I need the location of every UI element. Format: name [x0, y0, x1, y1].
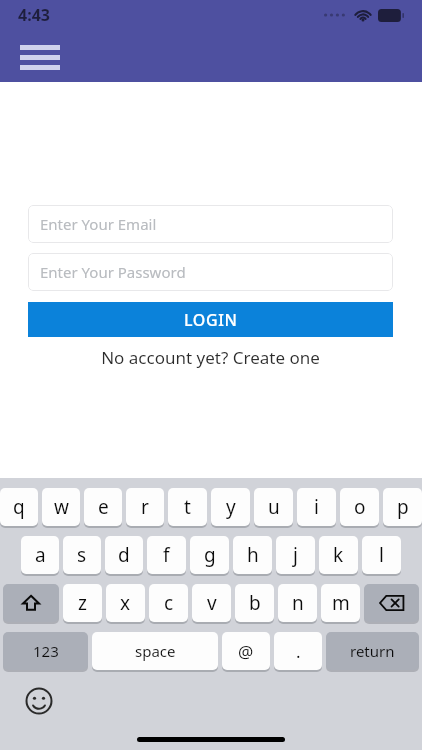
staticText: p	[397, 494, 409, 520]
staticText: i	[314, 494, 319, 520]
button[interactable]: n	[278, 584, 317, 622]
button[interactable]: p	[383, 488, 422, 526]
staticText: t	[184, 494, 191, 520]
button[interactable]: LOGIN	[28, 302, 393, 337]
button[interactable]: r	[126, 488, 164, 526]
staticText: w	[54, 494, 69, 520]
button[interactable]: q	[0, 488, 38, 526]
staticText: m	[332, 590, 350, 616]
staticText: y	[226, 494, 236, 520]
button[interactable]: space	[92, 632, 218, 670]
staticText: s	[77, 542, 87, 568]
staticText: g	[204, 542, 216, 568]
staticText: f	[163, 542, 170, 568]
button[interactable]: return	[326, 632, 419, 670]
button[interactable]: h	[233, 536, 272, 574]
button[interactable]: Enter Your Email	[28, 205, 393, 243]
button[interactable]: l	[362, 536, 401, 574]
button[interactable]: Open navigation menu	[12, 40, 68, 74]
staticText: b	[249, 590, 261, 616]
button[interactable]: u	[254, 488, 293, 526]
button[interactable]: c	[149, 584, 188, 622]
staticText: u	[268, 494, 280, 520]
staticText: a	[35, 542, 46, 568]
staticText: space	[135, 641, 176, 661]
staticText: l	[379, 542, 384, 568]
button[interactable]: w	[42, 488, 80, 526]
staticText: 4:43	[18, 4, 50, 26]
button[interactable]: s	[63, 536, 101, 574]
staticText: No account yet? Create one	[101, 346, 320, 369]
button[interactable]: @	[222, 632, 270, 670]
staticText: .	[296, 640, 301, 663]
button[interactable]: b	[235, 584, 274, 622]
staticText: o	[354, 494, 366, 520]
staticText: d	[118, 542, 130, 568]
button[interactable]: y	[211, 488, 250, 526]
button[interactable]: x	[106, 584, 145, 622]
button[interactable]: j	[276, 536, 315, 574]
button[interactable]: .	[274, 632, 322, 670]
staticText: LOGIN	[184, 309, 238, 331]
button[interactable]: m	[321, 584, 360, 622]
staticText: h	[247, 542, 259, 568]
staticText: k	[333, 542, 344, 568]
button[interactable]: d	[105, 536, 143, 574]
staticText: r	[141, 494, 149, 520]
button[interactable]: Emoji keyboard	[24, 686, 54, 716]
staticText: q	[13, 494, 25, 520]
button[interactable]: a	[21, 536, 59, 574]
button[interactable]: 123	[3, 632, 88, 670]
staticText: 123	[33, 641, 59, 661]
staticText: return	[350, 641, 395, 661]
staticText: Enter Your Email	[40, 214, 157, 234]
button[interactable]: v	[192, 584, 231, 622]
button[interactable]: t	[168, 488, 207, 526]
button[interactable]: z	[63, 584, 102, 622]
button[interactable]: o	[340, 488, 379, 526]
button[interactable]: Backspace	[364, 584, 419, 622]
staticText: c	[164, 590, 174, 616]
button[interactable]: No account yet? Create one	[28, 346, 393, 369]
staticText: x	[120, 590, 131, 616]
staticText: n	[292, 590, 304, 616]
button[interactable]: g	[190, 536, 229, 574]
staticText: Enter Your Password	[40, 262, 186, 282]
button[interactable]: Enter Your Password	[28, 253, 393, 291]
button[interactable]: e	[84, 488, 122, 526]
button[interactable]: k	[319, 536, 358, 574]
button[interactable]: f	[147, 536, 186, 574]
staticText: j	[293, 542, 298, 568]
button[interactable]: Shift	[3, 584, 59, 622]
staticText: e	[98, 494, 109, 520]
button[interactable]: i	[297, 488, 336, 526]
staticText: v	[207, 590, 217, 616]
staticText: z	[78, 590, 87, 616]
staticText: @	[238, 640, 254, 663]
